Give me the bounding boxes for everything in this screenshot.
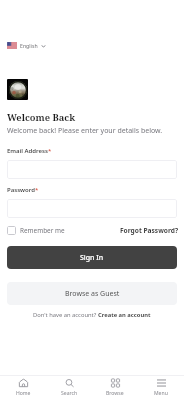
button[interactable]: Create an account xyxy=(98,311,151,319)
button[interactable]: Home xyxy=(0,376,46,400)
staticText: Remember me xyxy=(20,226,65,235)
button[interactable]: Browse xyxy=(92,376,138,400)
button[interactable]: App logo xyxy=(7,79,28,100)
staticText: Welcome Back xyxy=(7,111,76,124)
staticText: Welcome back! Please enter your details … xyxy=(7,126,163,136)
button[interactable]: Search xyxy=(46,376,92,400)
staticText: Password xyxy=(7,186,36,194)
button[interactable]: Forgot Password? xyxy=(120,226,179,235)
button[interactable]: Browse as Guest xyxy=(7,282,177,305)
staticText: Email Address xyxy=(7,147,49,155)
button[interactable]: Remember me xyxy=(7,225,65,235)
button[interactable]: English xyxy=(7,41,46,50)
staticText: Home xyxy=(16,390,31,397)
button[interactable]: Sign In xyxy=(7,246,177,269)
staticText: * xyxy=(48,147,52,155)
staticText: Search xyxy=(61,390,78,397)
staticText: English xyxy=(20,42,38,49)
staticText: * xyxy=(35,186,39,194)
staticText: Menu xyxy=(154,390,168,397)
staticText: Browse xyxy=(106,390,124,397)
staticText: Don't have an account? xyxy=(33,311,98,319)
button[interactable] xyxy=(7,199,177,218)
staticText: Sign In xyxy=(80,253,104,263)
staticText: Browse as Guest xyxy=(65,289,120,299)
button[interactable]: Menu xyxy=(138,376,184,400)
button[interactable] xyxy=(7,160,177,179)
